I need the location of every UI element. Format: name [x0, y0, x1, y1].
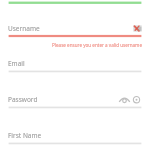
staticText: First Name	[8, 131, 42, 140]
staticText: Email	[8, 59, 25, 68]
staticText: Username	[8, 24, 40, 33]
button[interactable]: Help	[132, 95, 141, 104]
button[interactable]: Error	[133, 25, 142, 32]
button[interactable]: Show password	[118, 93, 131, 105]
staticText: Please ensure you enter a valid username	[0, 42, 142, 48]
staticText: Password	[8, 95, 38, 104]
